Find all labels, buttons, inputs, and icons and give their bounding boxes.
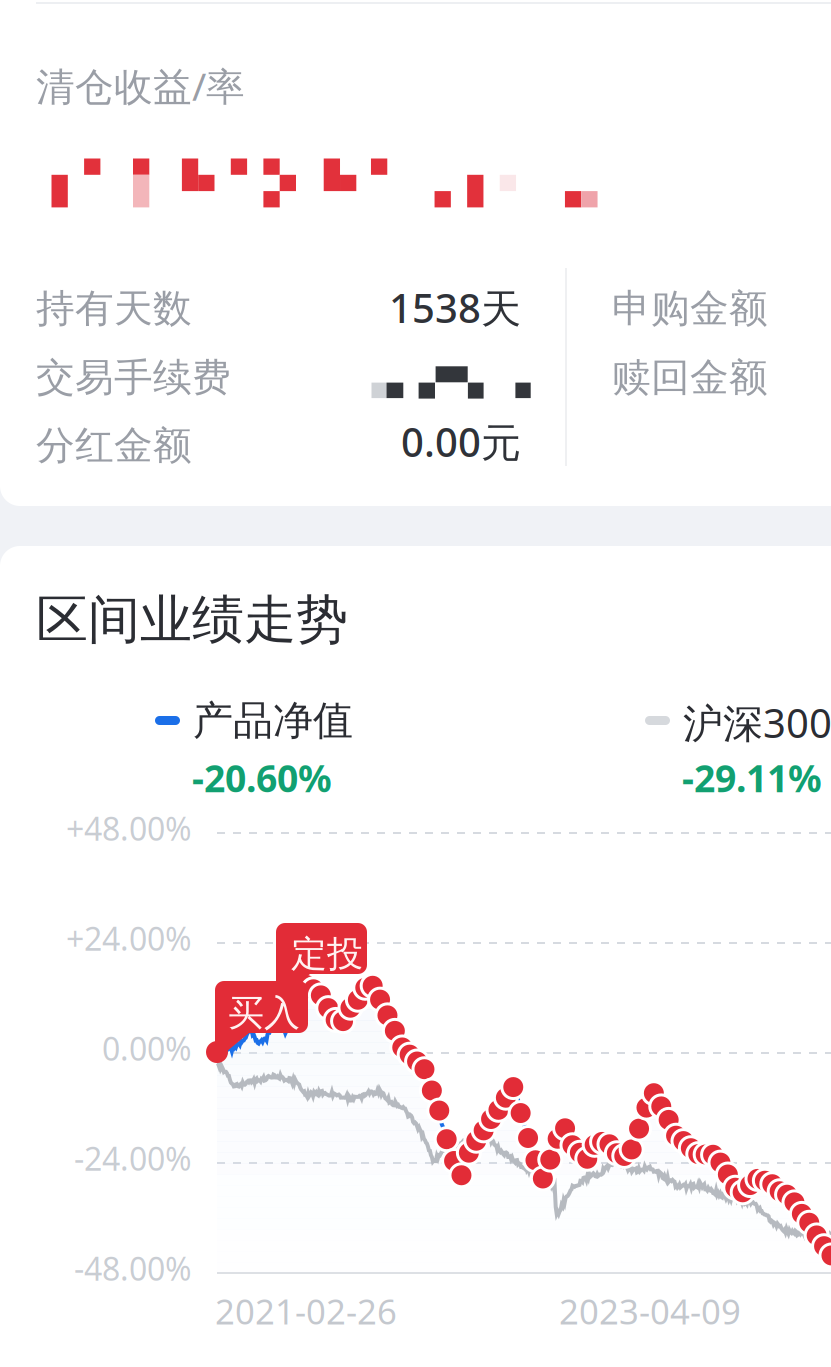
- staticText: 2021-02-26: [215, 1288, 397, 1334]
- staticText: 买入: [228, 991, 300, 1035]
- staticText: 产品净值: [193, 696, 353, 745]
- staticText: 清仓收益/率: [36, 60, 245, 111]
- staticText: 分红金额: [36, 422, 192, 469]
- staticText: 区间业绩走势: [36, 588, 348, 652]
- staticText: -24.00%: [74, 1137, 192, 1179]
- staticText: -20.60%: [192, 753, 332, 803]
- staticText: 0.00%: [102, 1027, 192, 1069]
- staticText: 2023-04-09: [559, 1288, 741, 1334]
- staticText: -29.11%: [682, 753, 822, 803]
- staticText: +48.00%: [66, 807, 192, 849]
- staticText: 赎回金额: [612, 354, 768, 401]
- staticText: +24.00%: [66, 917, 192, 959]
- staticText: 申购金额: [612, 285, 768, 332]
- staticText: 沪深300: [683, 696, 831, 749]
- staticText: -48.00%: [74, 1247, 192, 1289]
- staticText: 定投: [291, 932, 363, 976]
- staticText: 交易手续费: [36, 354, 231, 401]
- staticText: 1538天: [389, 281, 521, 334]
- staticText: 持有天数: [36, 285, 192, 332]
- staticText: 0.00元: [401, 415, 521, 468]
